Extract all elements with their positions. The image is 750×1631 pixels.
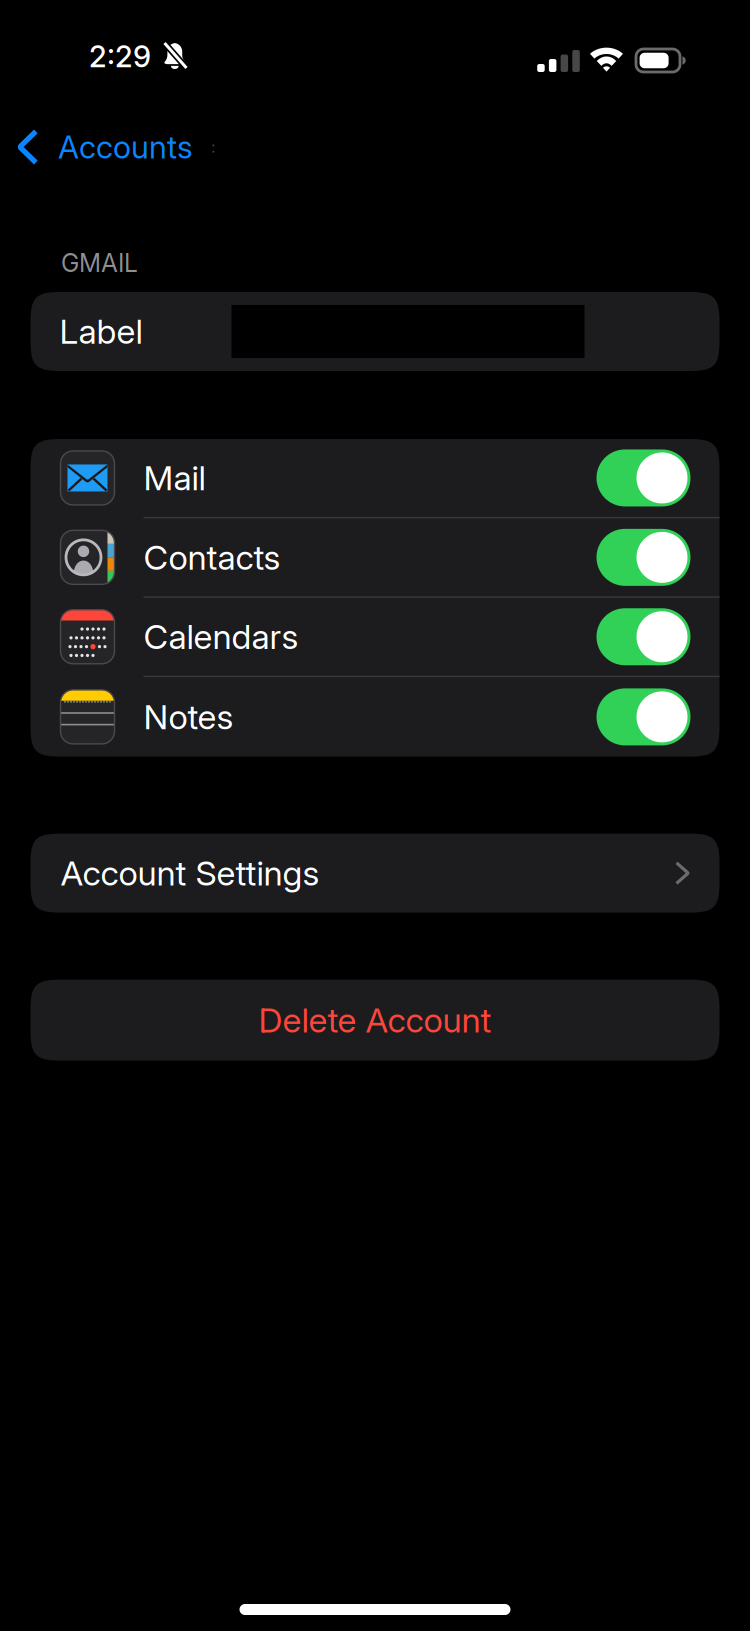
- staticText: Account Settings: [60, 852, 319, 894]
- staticText: Mail: [143, 457, 205, 498]
- button[interactable]: Contacts: [30, 518, 719, 598]
- staticText: 2:29: [89, 39, 151, 74]
- button[interactable]: Notes: [30, 677, 719, 757]
- staticText: Contacts: [143, 537, 280, 578]
- staticText: Accounts: [58, 128, 193, 166]
- staticText: Notes: [143, 696, 233, 737]
- button[interactable]: Delete Account: [30, 980, 719, 1061]
- staticText: Delete Account: [258, 999, 491, 1041]
- button[interactable]: Account Settings: [30, 834, 719, 913]
- button[interactable]: Mail: [30, 439, 719, 518]
- staticText: Label: [59, 311, 142, 352]
- staticText: :: [211, 137, 216, 157]
- staticText: Calendars: [143, 616, 298, 657]
- button[interactable]: Accounts: [0, 125, 201, 169]
- staticText: GMAIL: [61, 248, 138, 278]
- button[interactable]: Calendars: [30, 598, 719, 677]
- button[interactable]: Label: [30, 292, 719, 371]
